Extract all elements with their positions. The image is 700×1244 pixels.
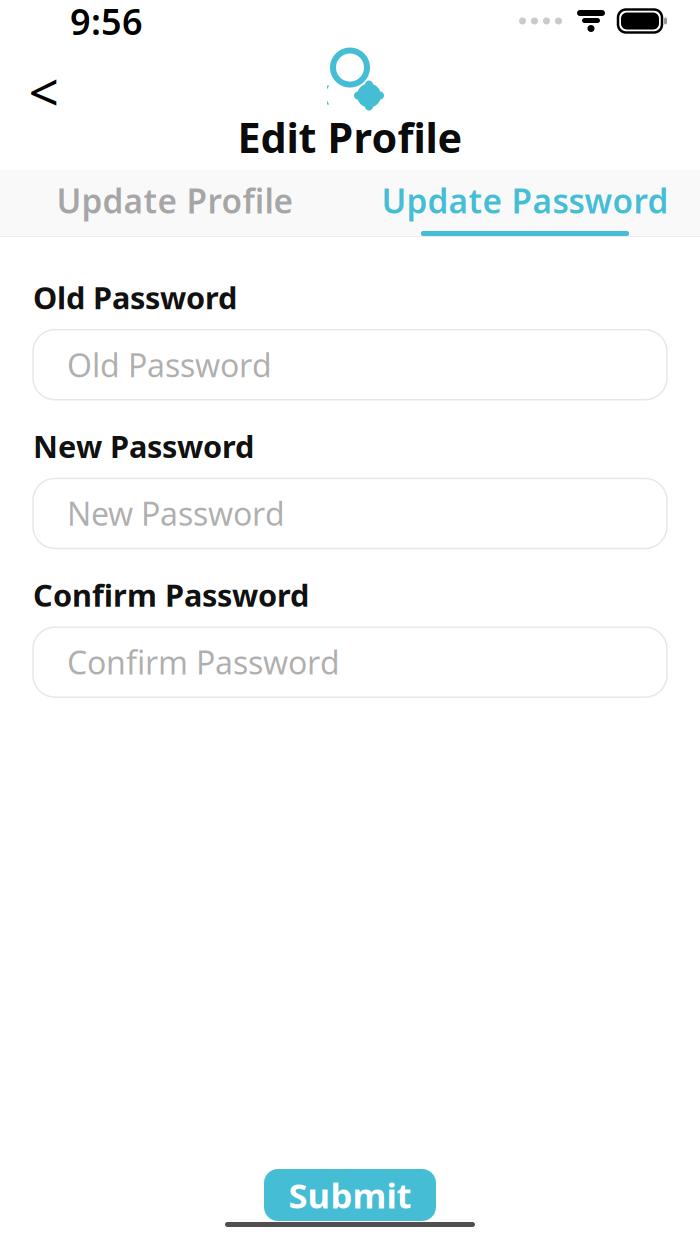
staticText: Old Password [33, 277, 237, 318]
staticText: Update Profile [56, 178, 293, 223]
staticText: 9:56 [70, 0, 143, 45]
button[interactable]: Back [16, 63, 72, 119]
staticText: New Password [67, 492, 285, 535]
button[interactable]: Update Password [350, 170, 700, 236]
staticText: Submit [288, 1172, 411, 1218]
button[interactable]: Update Profile [0, 170, 350, 236]
staticText: New Password [33, 426, 254, 466]
button[interactable]: Submit [264, 1169, 436, 1221]
staticText: Update Password [381, 178, 668, 223]
staticText: < [28, 56, 59, 126]
staticText: Old Password [67, 343, 272, 386]
staticText: Edit Profile [237, 110, 462, 164]
staticText: Confirm Password [33, 574, 309, 615]
staticText: Confirm Password [67, 641, 340, 683]
